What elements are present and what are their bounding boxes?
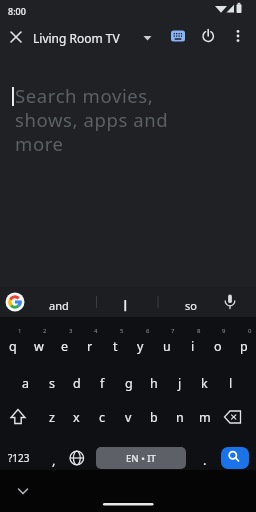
- staticText: x: [73, 409, 80, 426]
- button[interactable]: [0, 405, 38, 431]
- staticText: y: [137, 338, 144, 355]
- button[interactable]: m: [192, 405, 217, 429]
- staticText: t: [113, 338, 118, 355]
- button[interactable]: c: [90, 405, 115, 429]
- button[interactable]: i: [180, 334, 205, 358]
- staticText: c: [99, 409, 106, 426]
- button[interactable]: o: [205, 334, 230, 358]
- button[interactable]: [64, 446, 90, 472]
- button[interactable]: l: [218, 371, 243, 395]
- staticText: u: [163, 338, 171, 355]
- staticText: r: [87, 338, 93, 355]
- staticText: Search movies, shows, apps and more: [15, 83, 169, 156]
- button[interactable]: p: [231, 334, 256, 358]
- button[interactable]: w: [26, 334, 51, 358]
- staticText: w: [34, 338, 44, 355]
- staticText: i: [191, 338, 195, 355]
- button[interactable]: [2, 290, 28, 314]
- staticText: v: [125, 409, 132, 426]
- button[interactable]: v: [116, 405, 141, 429]
- staticText: EN • IT: [126, 452, 156, 465]
- button[interactable]: so: [173, 295, 209, 315]
- button[interactable]: and: [39, 295, 79, 315]
- staticText: 8:00: [8, 5, 26, 17]
- staticText: j: [178, 375, 182, 392]
- button[interactable]: q: [0, 334, 25, 358]
- button[interactable]: k: [192, 371, 217, 395]
- button[interactable]: s: [39, 371, 64, 395]
- button[interactable]: t: [103, 334, 128, 358]
- button[interactable]: x: [64, 405, 89, 429]
- button[interactable]: d: [64, 371, 89, 395]
- staticText: o: [214, 338, 222, 355]
- staticText: .: [203, 451, 207, 469]
- button[interactable]: [140, 26, 156, 50]
- staticText: 0: [248, 327, 252, 335]
- button[interactable]: [118, 292, 140, 314]
- button[interactable]: u: [154, 334, 179, 358]
- staticText: a: [22, 375, 30, 392]
- button[interactable]: [228, 26, 248, 48]
- staticText: n: [176, 409, 184, 426]
- staticText: ,: [52, 451, 56, 469]
- button[interactable]: z: [39, 405, 64, 429]
- button[interactable]: e: [52, 334, 77, 358]
- staticText: d: [73, 375, 81, 392]
- button[interactable]: n: [167, 405, 192, 429]
- button[interactable]: r: [77, 334, 102, 358]
- button[interactable]: [10, 482, 36, 502]
- button[interactable]: Living Room TV: [33, 28, 143, 47]
- staticText: 2: [43, 327, 47, 335]
- button[interactable]: [218, 405, 256, 431]
- staticText: 1: [18, 327, 22, 335]
- button[interactable]: a: [13, 371, 38, 395]
- staticText: g: [125, 375, 133, 392]
- button[interactable]: ?123: [0, 446, 38, 470]
- button[interactable]: .: [195, 448, 215, 472]
- button[interactable]: [221, 447, 249, 469]
- button[interactable]: [218, 290, 242, 314]
- button[interactable]: b: [141, 405, 166, 429]
- button[interactable]: f: [90, 371, 115, 395]
- staticText: 3: [69, 327, 73, 335]
- button[interactable]: h: [141, 371, 166, 395]
- staticText: 4: [94, 327, 98, 335]
- staticText: l: [229, 375, 233, 392]
- staticText: ?123: [8, 451, 30, 465]
- staticText: m: [199, 409, 211, 426]
- staticText: Living Room TV: [33, 30, 120, 46]
- button[interactable]: y: [128, 334, 153, 358]
- button[interactable]: ,: [44, 448, 64, 472]
- staticText: p: [240, 338, 248, 355]
- button[interactable]: EN • IT: [96, 447, 186, 469]
- staticText: s: [49, 375, 55, 392]
- staticText: b: [150, 409, 158, 426]
- staticText: 8: [197, 327, 201, 335]
- staticText: k: [201, 375, 208, 392]
- staticText: so: [185, 298, 197, 313]
- staticText: e: [61, 338, 69, 355]
- staticText: 7: [171, 327, 175, 335]
- button[interactable]: g: [116, 371, 141, 395]
- staticText: 6: [146, 327, 150, 335]
- staticText: and: [49, 298, 69, 313]
- staticText: 9: [222, 327, 226, 335]
- staticText: q: [9, 338, 17, 355]
- staticText: z: [49, 409, 55, 426]
- button[interactable]: [196, 26, 220, 48]
- staticText: h: [150, 375, 158, 392]
- button[interactable]: [2, 26, 28, 50]
- button[interactable]: j: [167, 371, 192, 395]
- staticText: f: [100, 375, 105, 392]
- staticText: 5: [120, 327, 124, 335]
- button[interactable]: [166, 26, 190, 48]
